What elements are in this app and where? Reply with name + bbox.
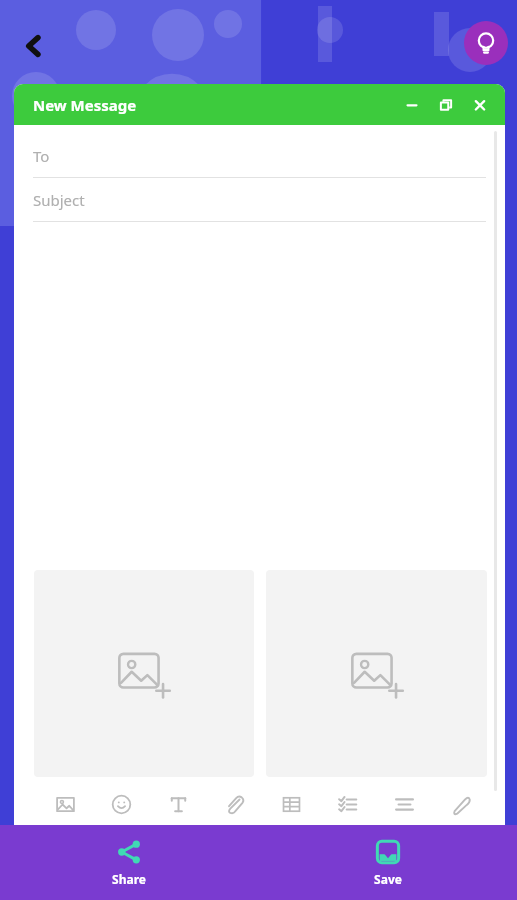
button[interactable]: Table — [274, 787, 308, 821]
button[interactable]: Add image — [266, 570, 487, 777]
button[interactable]: Share — [0, 825, 258, 900]
button[interactable]: Text format — [161, 787, 195, 821]
staticText: To — [33, 146, 50, 166]
button[interactable]: Checklist — [330, 787, 364, 821]
button[interactable]: Tips — [464, 21, 508, 65]
button[interactable]: Emoji — [104, 787, 138, 821]
staticText: Save — [374, 871, 402, 887]
button[interactable]: Close — [467, 92, 493, 118]
button[interactable]: Add image — [34, 570, 254, 777]
button[interactable]: Insert image — [48, 787, 82, 821]
button[interactable]: Save — [258, 825, 517, 900]
button[interactable]: Minimize — [399, 92, 425, 118]
button[interactable]: Back — [12, 24, 56, 68]
staticText: Subject — [33, 190, 85, 210]
button[interactable]: To — [33, 146, 486, 178]
staticText: Share — [112, 871, 146, 887]
button[interactable]: Draw — [443, 787, 477, 821]
staticText: New Message — [33, 95, 137, 115]
button[interactable]: Restore — [433, 92, 459, 118]
button[interactable]: Align — [387, 787, 421, 821]
button[interactable]: Attach file — [217, 787, 251, 821]
button[interactable]: Subject — [33, 190, 486, 222]
